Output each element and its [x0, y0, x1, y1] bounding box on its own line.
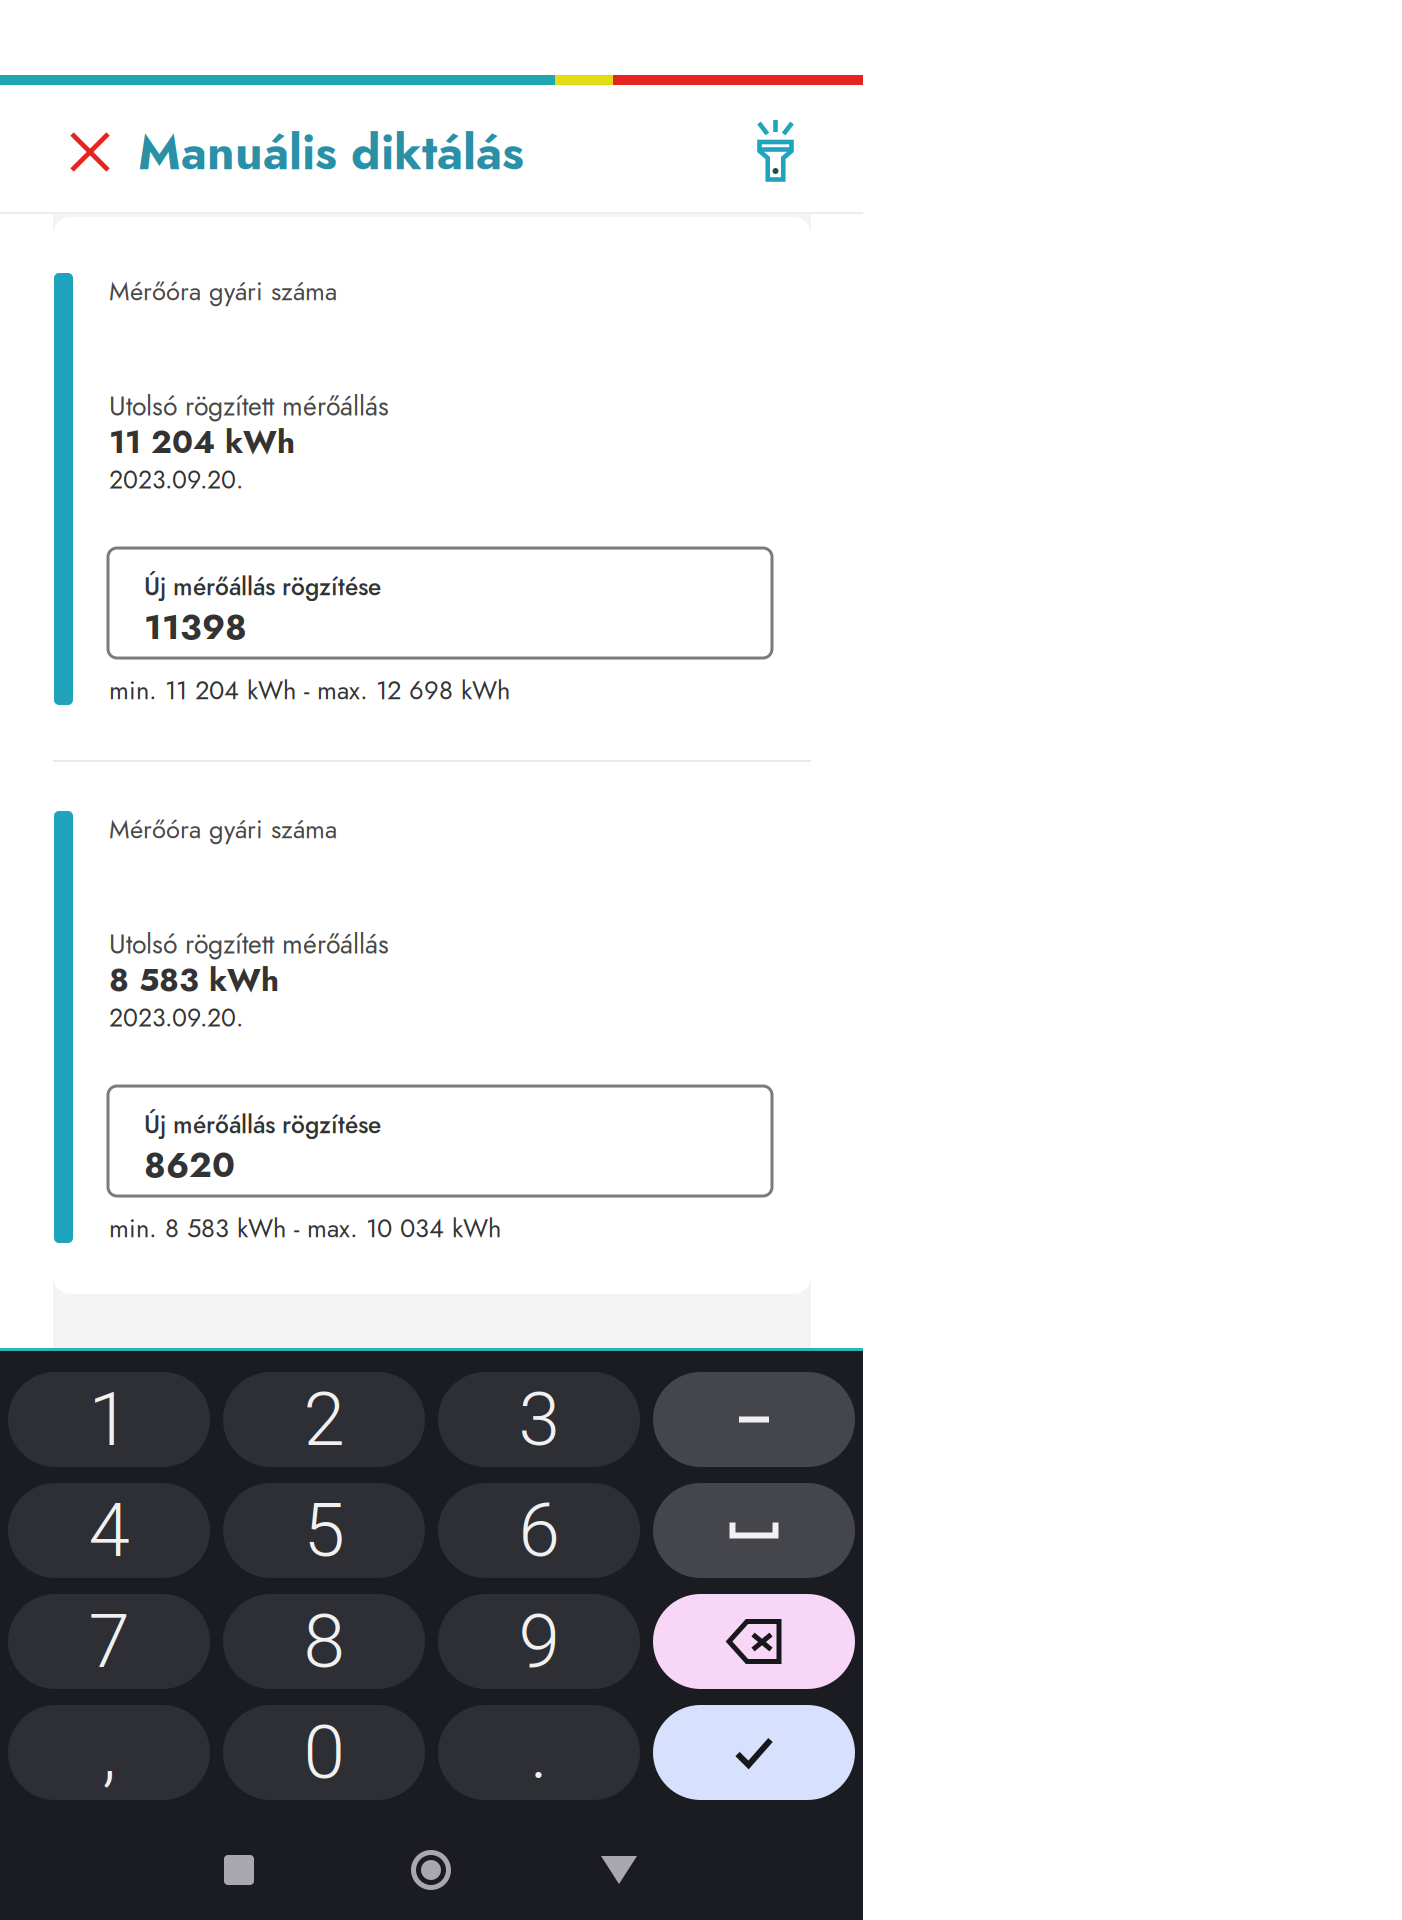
button[interactable]: Vissza: [601, 1856, 637, 1886]
staticText: 11 204 kWh: [109, 419, 295, 465]
staticText: 4: [88, 1487, 129, 1574]
staticText: Utolsó rögzített mérőállás: [109, 387, 389, 425]
staticText: 3: [518, 1376, 559, 1463]
staticText: Utolsó rögzített mérőállás: [109, 925, 389, 963]
button[interactable]: ,: [8, 1705, 210, 1800]
staticText: 2: [303, 1376, 344, 1463]
button[interactable]: 7: [8, 1594, 210, 1689]
button[interactable]: 5: [223, 1483, 425, 1578]
staticText: min. 11 204 kWh - max. 12 698 kWh: [109, 672, 510, 709]
button[interactable]: 2: [223, 1372, 425, 1467]
button[interactable]: Kész: [653, 1705, 855, 1800]
staticText: 2023.09.20.: [109, 462, 243, 498]
staticText: 11398: [144, 602, 247, 652]
button[interactable]: 9: [438, 1594, 640, 1689]
button[interactable]: 6: [438, 1483, 640, 1578]
staticText: 5: [303, 1487, 344, 1574]
button[interactable]: Szóköz: [653, 1483, 855, 1578]
button[interactable]: Kezdőlap: [409, 1848, 453, 1892]
button[interactable]: Zseblámpa: [737, 112, 817, 192]
button[interactable]: 3: [438, 1372, 640, 1467]
button[interactable]: .: [438, 1705, 640, 1800]
button[interactable]: 0: [223, 1705, 425, 1800]
button[interactable]: Törlés: [653, 1594, 855, 1689]
button[interactable]: 1: [8, 1372, 210, 1467]
staticText: 7: [88, 1598, 129, 1685]
button[interactable]: 8: [223, 1594, 425, 1689]
staticText: Új mérőállás rögzítése: [144, 1107, 381, 1142]
button[interactable]: 4: [8, 1483, 210, 1578]
staticText: 9: [518, 1598, 559, 1685]
staticText: ,: [102, 1709, 116, 1796]
staticText: 8 583 kWh: [109, 957, 279, 1003]
staticText: 2023.09.20.: [109, 1000, 243, 1036]
staticText: Manuális diktálás: [138, 118, 524, 187]
staticText: 0: [303, 1709, 344, 1796]
staticText: Mérőóra gyári száma: [109, 273, 337, 310]
staticText: .: [530, 1709, 548, 1796]
staticText: 8: [303, 1598, 344, 1685]
button[interactable]: Bezárás: [52, 114, 128, 190]
staticText: Mérőóra gyári száma: [109, 811, 337, 848]
button[interactable]: Legutóbbiak: [224, 1855, 254, 1885]
staticText: min. 8 583 kWh - max. 10 034 kWh: [109, 1210, 501, 1247]
staticText: 8620: [144, 1140, 235, 1190]
staticText: 6: [518, 1487, 559, 1574]
staticText: Új mérőállás rögzítése: [144, 569, 381, 604]
button[interactable]: Kötőjel: [653, 1372, 855, 1467]
staticText: 1: [88, 1376, 129, 1463]
